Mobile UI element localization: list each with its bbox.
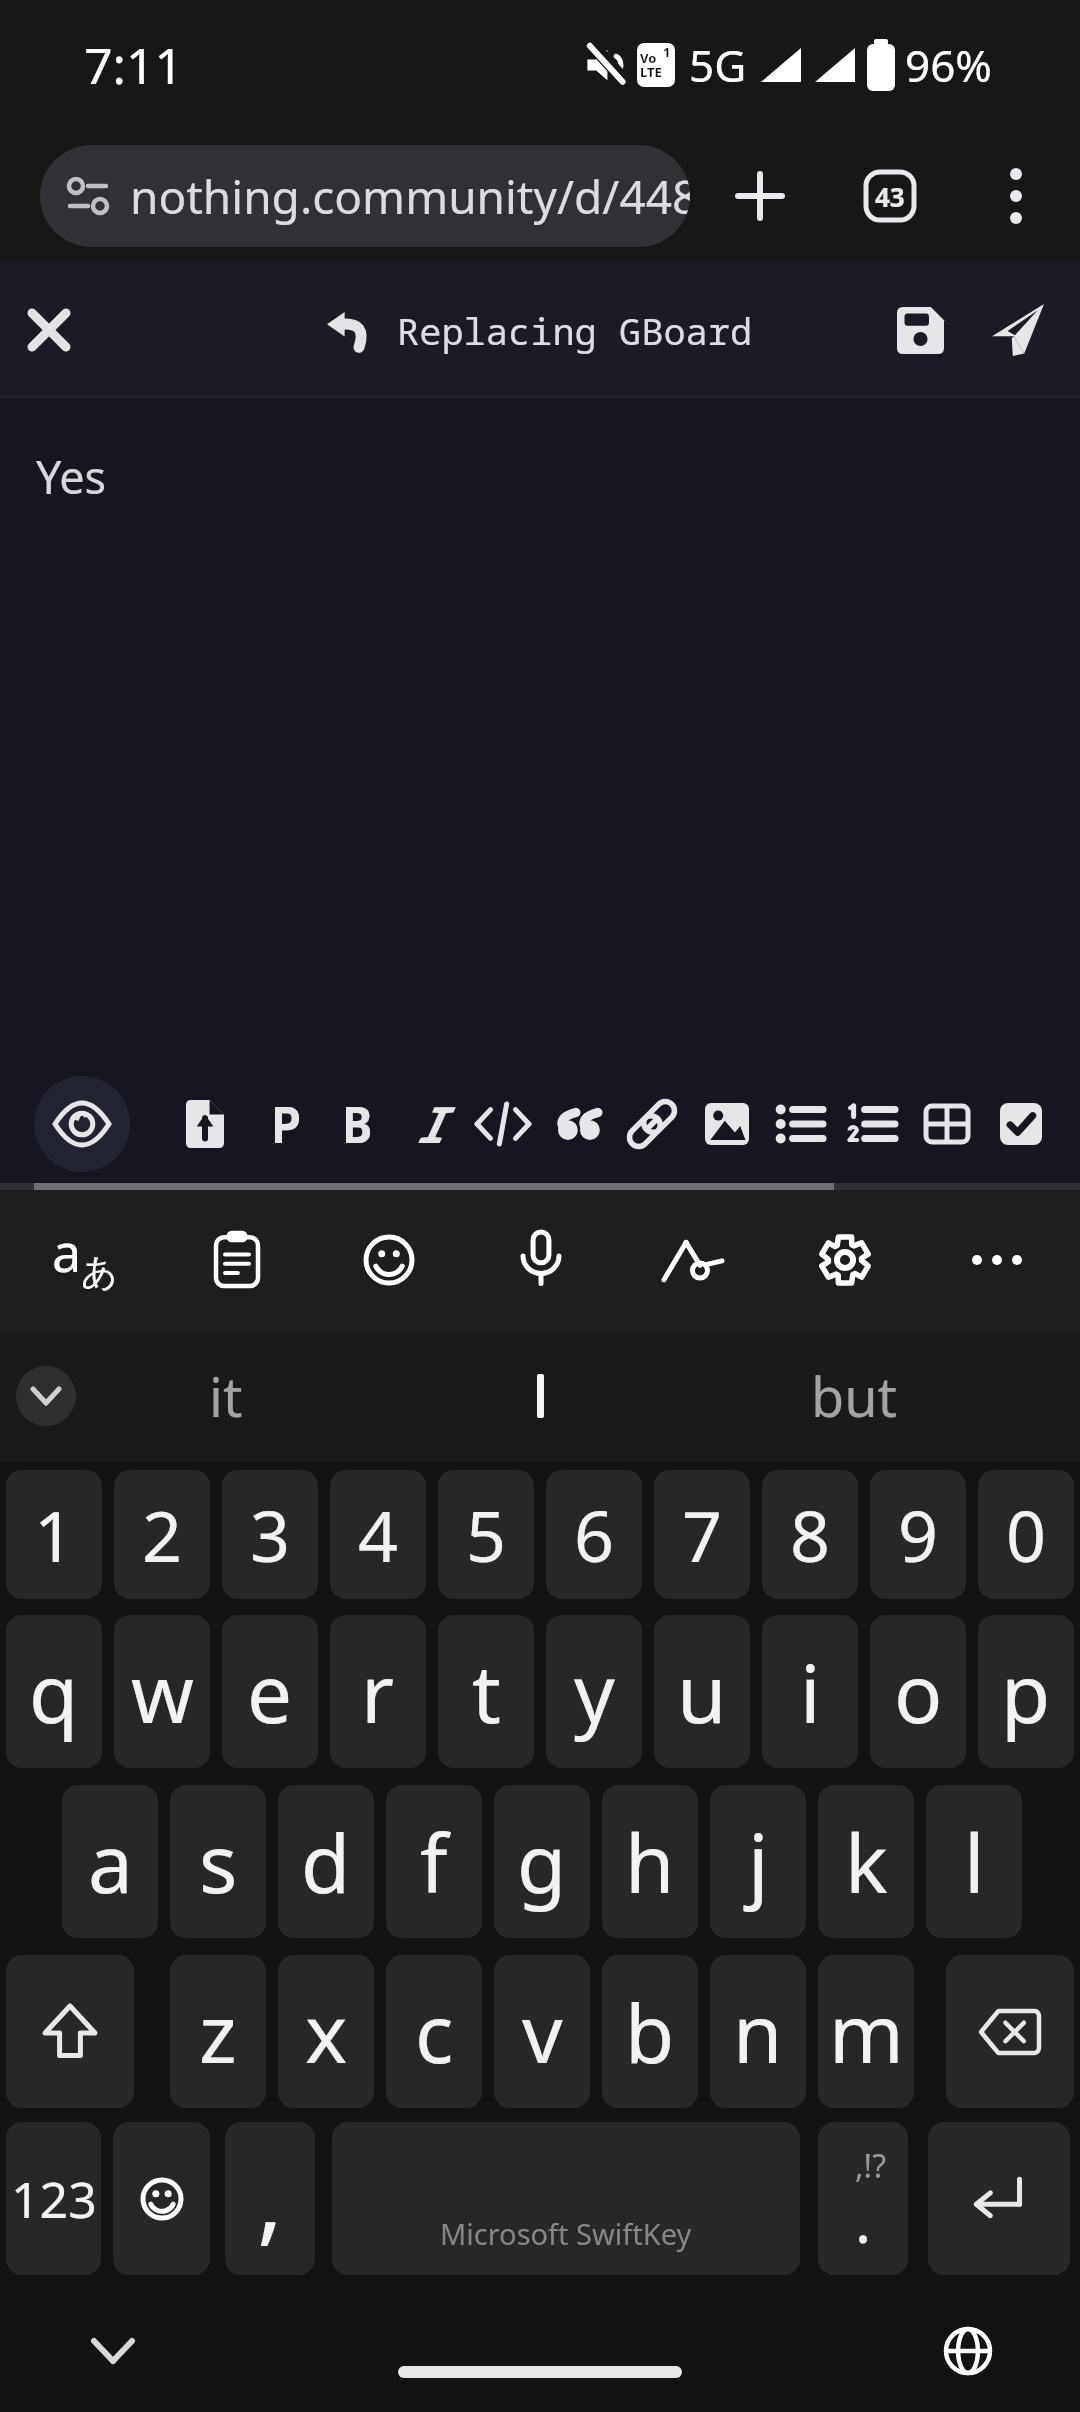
button[interactable]: s [170, 1785, 266, 1938]
button[interactable]: t [438, 1615, 534, 1768]
button[interactable] [467, 1088, 539, 1160]
button[interactable]: 2 [114, 1470, 210, 1599]
button[interactable]: p [978, 1615, 1074, 1768]
button[interactable]: n [710, 1955, 806, 2108]
button[interactable]: d [278, 1785, 374, 1938]
button[interactable]: P [250, 1088, 322, 1160]
button[interactable]: l [926, 1785, 1022, 1938]
staticText: d [301, 1807, 351, 1916]
staticText: , [257, 2130, 283, 2261]
button[interactable] [911, 1088, 983, 1160]
button[interactable]: k [818, 1785, 914, 1938]
button[interactable]: b [602, 1955, 698, 2108]
button[interactable] [34, 1076, 130, 1172]
button[interactable]: x [278, 1955, 374, 2108]
button[interactable]: 1 [6, 1470, 102, 1599]
button[interactable]: 9 [870, 1470, 966, 1599]
button[interactable]: 0 [978, 1470, 1074, 1599]
staticText: m [829, 1977, 904, 2086]
button[interactable]: g [494, 1785, 590, 1938]
button[interactable] [169, 1088, 241, 1160]
button[interactable] [187, 1210, 287, 1310]
staticText: P [271, 1090, 301, 1158]
button[interactable] [795, 1210, 895, 1310]
staticText: 2 [142, 1487, 183, 1582]
button[interactable]: 8 [762, 1470, 858, 1599]
button[interactable]: m [818, 1955, 914, 2108]
button[interactable] [738, 174, 782, 218]
button[interactable] [16, 1366, 76, 1426]
button[interactable] [1006, 166, 1026, 226]
staticText: ,!? [855, 2144, 887, 2188]
staticText: Replacing GBoard [397, 305, 753, 355]
button[interactable] [944, 2327, 992, 2375]
button[interactable] [491, 1210, 591, 1310]
button[interactable]: , [225, 2122, 315, 2275]
button[interactable] [836, 1088, 908, 1160]
staticText: q [29, 1637, 79, 1746]
staticText: o [894, 1637, 943, 1746]
button[interactable] [339, 1210, 439, 1310]
button[interactable]: Microsoft SwiftKey [332, 2122, 800, 2275]
button[interactable]: nothing.community/d/448 [40, 145, 690, 247]
button[interactable]: 4 [330, 1470, 426, 1599]
staticText: i [800, 1637, 821, 1746]
button[interactable]: j [710, 1785, 806, 1938]
staticText: B [342, 1090, 372, 1158]
button[interactable]: h [602, 1785, 698, 1938]
button[interactable] [985, 1088, 1057, 1160]
button[interactable] [928, 2122, 1070, 2275]
button[interactable]: v [494, 1955, 590, 2108]
button[interactable]: c [386, 1955, 482, 2108]
staticText: nothing.community/d/448 [130, 165, 690, 228]
button[interactable]: I [393, 1088, 465, 1160]
button[interactable]: w [114, 1615, 210, 1768]
button[interactable]: i [762, 1615, 858, 1768]
button[interactable]: o [870, 1615, 966, 1768]
button[interactable]: q [6, 1615, 102, 1768]
button[interactable] [691, 1088, 763, 1160]
staticText: a [88, 1807, 133, 1916]
staticText: 1 [34, 1487, 75, 1582]
button[interactable]: a [62, 1785, 158, 1938]
button[interactable] [946, 1955, 1074, 2108]
button[interactable] [616, 1088, 688, 1160]
button[interactable] [32, 313, 66, 347]
staticText: 1 [663, 43, 671, 61]
button[interactable]: ,!? [818, 2122, 908, 2275]
staticText: v [522, 1977, 563, 2086]
button[interactable] [764, 1088, 836, 1160]
button[interactable]: f [386, 1785, 482, 1938]
button[interactable]: 123 [6, 2122, 101, 2275]
button[interactable] [94, 2341, 132, 2361]
button[interactable] [947, 1210, 1047, 1310]
staticText: 4 [358, 1487, 399, 1582]
button[interactable]: e [222, 1615, 318, 1768]
staticText: it [209, 1359, 243, 1433]
button[interactable] [897, 307, 944, 354]
staticText: g [517, 1807, 567, 1916]
button[interactable]: 43 [864, 170, 916, 222]
button[interactable]: 3 [222, 1470, 318, 1599]
button[interactable] [6, 1955, 134, 2108]
button[interactable]: 7 [654, 1470, 750, 1599]
button[interactable] [643, 1210, 743, 1310]
button[interactable]: but [724, 1330, 984, 1462]
button[interactable]: u [654, 1615, 750, 1768]
button[interactable]: z [170, 1955, 266, 2108]
button[interactable]: 5 [438, 1470, 534, 1599]
button[interactable] [410, 1330, 670, 1462]
staticText: l [964, 1807, 985, 1916]
button[interactable] [992, 304, 1044, 356]
button[interactable]: B [321, 1088, 393, 1160]
button[interactable]: it [96, 1330, 356, 1462]
button[interactable]: y [546, 1615, 642, 1768]
staticText: Microsoft SwiftKey [440, 2214, 692, 2253]
button[interactable]: a [35, 1210, 135, 1310]
button[interactable]: r [330, 1615, 426, 1768]
button[interactable] [542, 1088, 614, 1160]
staticText: 7 [682, 1487, 723, 1582]
button[interactable]: 6 [546, 1470, 642, 1599]
staticText: r [361, 1637, 395, 1746]
button[interactable] [113, 2122, 210, 2275]
